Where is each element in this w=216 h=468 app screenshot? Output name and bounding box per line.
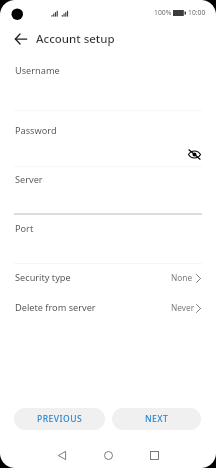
staticText: Never [171,302,195,313]
staticText: NEXT [145,413,169,425]
button[interactable] [0,263,216,292]
staticText: Delete from server [15,301,96,314]
staticText: Account setup [36,31,115,47]
button[interactable] [0,52,216,110]
staticText: Security type [15,271,71,284]
button[interactable]: Back [8,26,34,52]
button[interactable]: Show password [185,145,203,163]
button[interactable] [0,292,216,322]
button[interactable] [0,110,216,166]
staticText: 100% [154,8,172,17]
staticText: Password [15,124,57,137]
button[interactable]: NEXT [112,408,201,430]
staticText: 10:00 [188,8,206,17]
staticText: Port [15,222,34,235]
button[interactable] [0,166,216,213]
button[interactable]: PREVIOUS [14,408,105,430]
staticText: Server [15,173,43,186]
button[interactable]: Home [85,437,132,468]
button[interactable]: Recent apps [131,437,178,468]
staticText: PREVIOUS [37,413,83,425]
staticText: Username [15,64,60,77]
button[interactable] [0,213,216,263]
button[interactable]: Back [38,437,85,468]
staticText: None [171,272,193,283]
